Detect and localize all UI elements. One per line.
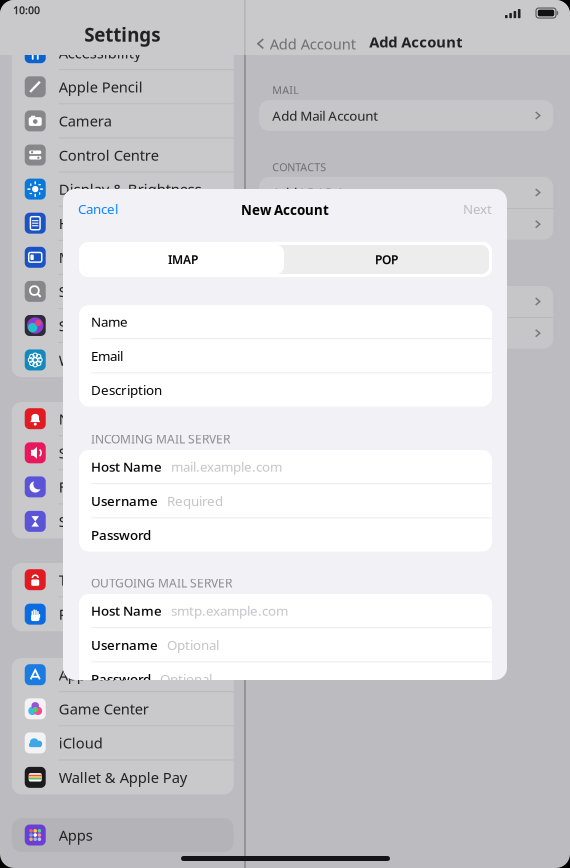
button[interactable]: Cancel [72, 195, 124, 223]
button[interactable]: Accessibility [12, 36, 234, 70]
staticText: POP [375, 251, 398, 267]
staticText: Email [91, 347, 123, 365]
staticText: Siri [59, 316, 81, 335]
button[interactable]: Add CardDAV Account [259, 209, 553, 240]
button[interactable]: Siri [12, 309, 234, 343]
staticText: Add Account [369, 32, 462, 51]
staticText: mail.example.com [171, 458, 282, 475]
button[interactable]: Next [457, 195, 498, 223]
staticText: Sounds [59, 443, 110, 463]
staticText: Settings [84, 22, 160, 47]
staticText: Username [91, 492, 158, 510]
staticText: INCOMING MAIL SERVER [91, 431, 230, 447]
staticText: App Store [59, 665, 126, 684]
staticText: Display & Brightness [59, 179, 202, 199]
button[interactable]: Camera [12, 104, 234, 138]
staticText: Next [463, 200, 492, 218]
button[interactable]: Display & Brightness [12, 172, 234, 206]
staticText: Accessibility [59, 43, 141, 62]
staticText: Game Center [59, 699, 149, 719]
staticText: Add Mail Account [272, 107, 378, 124]
button[interactable]: Wallet & Apple Pay [12, 760, 234, 794]
staticText: Home Screen & App Library [59, 213, 224, 233]
staticText: Description [91, 381, 162, 399]
button[interactable]: IMAP [82, 245, 284, 274]
staticText: iCloud [59, 733, 103, 753]
button[interactable]: Apple Pencil [12, 70, 234, 104]
button[interactable]: Control Centre [12, 138, 234, 172]
button[interactable]: Add Mail Account [259, 100, 553, 131]
staticText: CONTACTS [272, 160, 326, 174]
button[interactable]: POP [284, 245, 489, 274]
button[interactable]: Touch ID & Passcode [12, 563, 234, 597]
staticText: Add LDAP Account [272, 184, 386, 201]
button[interactable]: Add Account [256, 30, 356, 57]
staticText: Focus [59, 477, 99, 497]
staticText: Password [91, 526, 151, 544]
button[interactable]: Game Center [12, 692, 234, 726]
staticText: Host Name [91, 458, 162, 475]
button[interactable]: Add Subscribed Calendar [259, 318, 553, 349]
button[interactable]: Add CalDAV Account [259, 286, 553, 318]
button[interactable]: Screen Time [12, 504, 234, 538]
button[interactable]: Focus [12, 470, 234, 504]
button[interactable]: Privacy & Security [12, 597, 234, 631]
staticText: Notifications [59, 409, 146, 428]
button[interactable]: iCloud [12, 726, 234, 760]
staticText: Screen Time [59, 512, 143, 531]
staticText: Control Centre [59, 145, 159, 165]
button[interactable]: Notifications [12, 402, 234, 436]
staticText: smtp.example.com [171, 602, 288, 619]
staticText: Apple Pencil [59, 77, 143, 97]
staticText: Cancel [78, 200, 118, 218]
button[interactable]: Add LDAP Account [259, 177, 553, 209]
staticText: Username [91, 636, 158, 654]
staticText: Password [91, 670, 151, 688]
staticText: Add Account [270, 34, 356, 53]
button[interactable]: Sounds [12, 436, 234, 470]
button[interactable]: App Store [12, 658, 234, 692]
staticText: Wallpaper [59, 350, 128, 370]
staticText: Wallet & Apple Pay [59, 768, 187, 787]
staticText: Optional [160, 670, 212, 688]
staticText: 10:00 [13, 3, 40, 17]
button[interactable]: Wallpaper [12, 343, 234, 377]
staticText: Add Subscribed Calendar [272, 324, 426, 342]
staticText: Add CalDAV Account [272, 293, 396, 310]
staticText: Search [59, 282, 105, 301]
staticText: Apps [59, 825, 93, 845]
button[interactable]: Apps [12, 818, 234, 852]
staticText: CALENDARS [272, 269, 334, 283]
button[interactable]: Home Screen & App Library [12, 206, 234, 241]
staticText: IMAP [168, 251, 198, 267]
staticText: New Account [241, 201, 329, 219]
staticText: Privacy & Security [59, 604, 180, 624]
staticText: Camera [59, 111, 112, 131]
staticText: Touch ID & Passcode [59, 570, 203, 589]
staticText: MAIL [272, 83, 299, 97]
staticText: Multitasking & Gestures [59, 248, 224, 267]
staticText: OUTGOING MAIL SERVER [91, 575, 232, 591]
staticText: Required [167, 492, 223, 510]
staticText: Optional [167, 636, 219, 654]
staticText: Host Name [91, 602, 162, 619]
button[interactable]: Search [12, 275, 234, 309]
button[interactable]: Multitasking & Gestures [12, 241, 234, 275]
staticText: Name [91, 313, 128, 330]
